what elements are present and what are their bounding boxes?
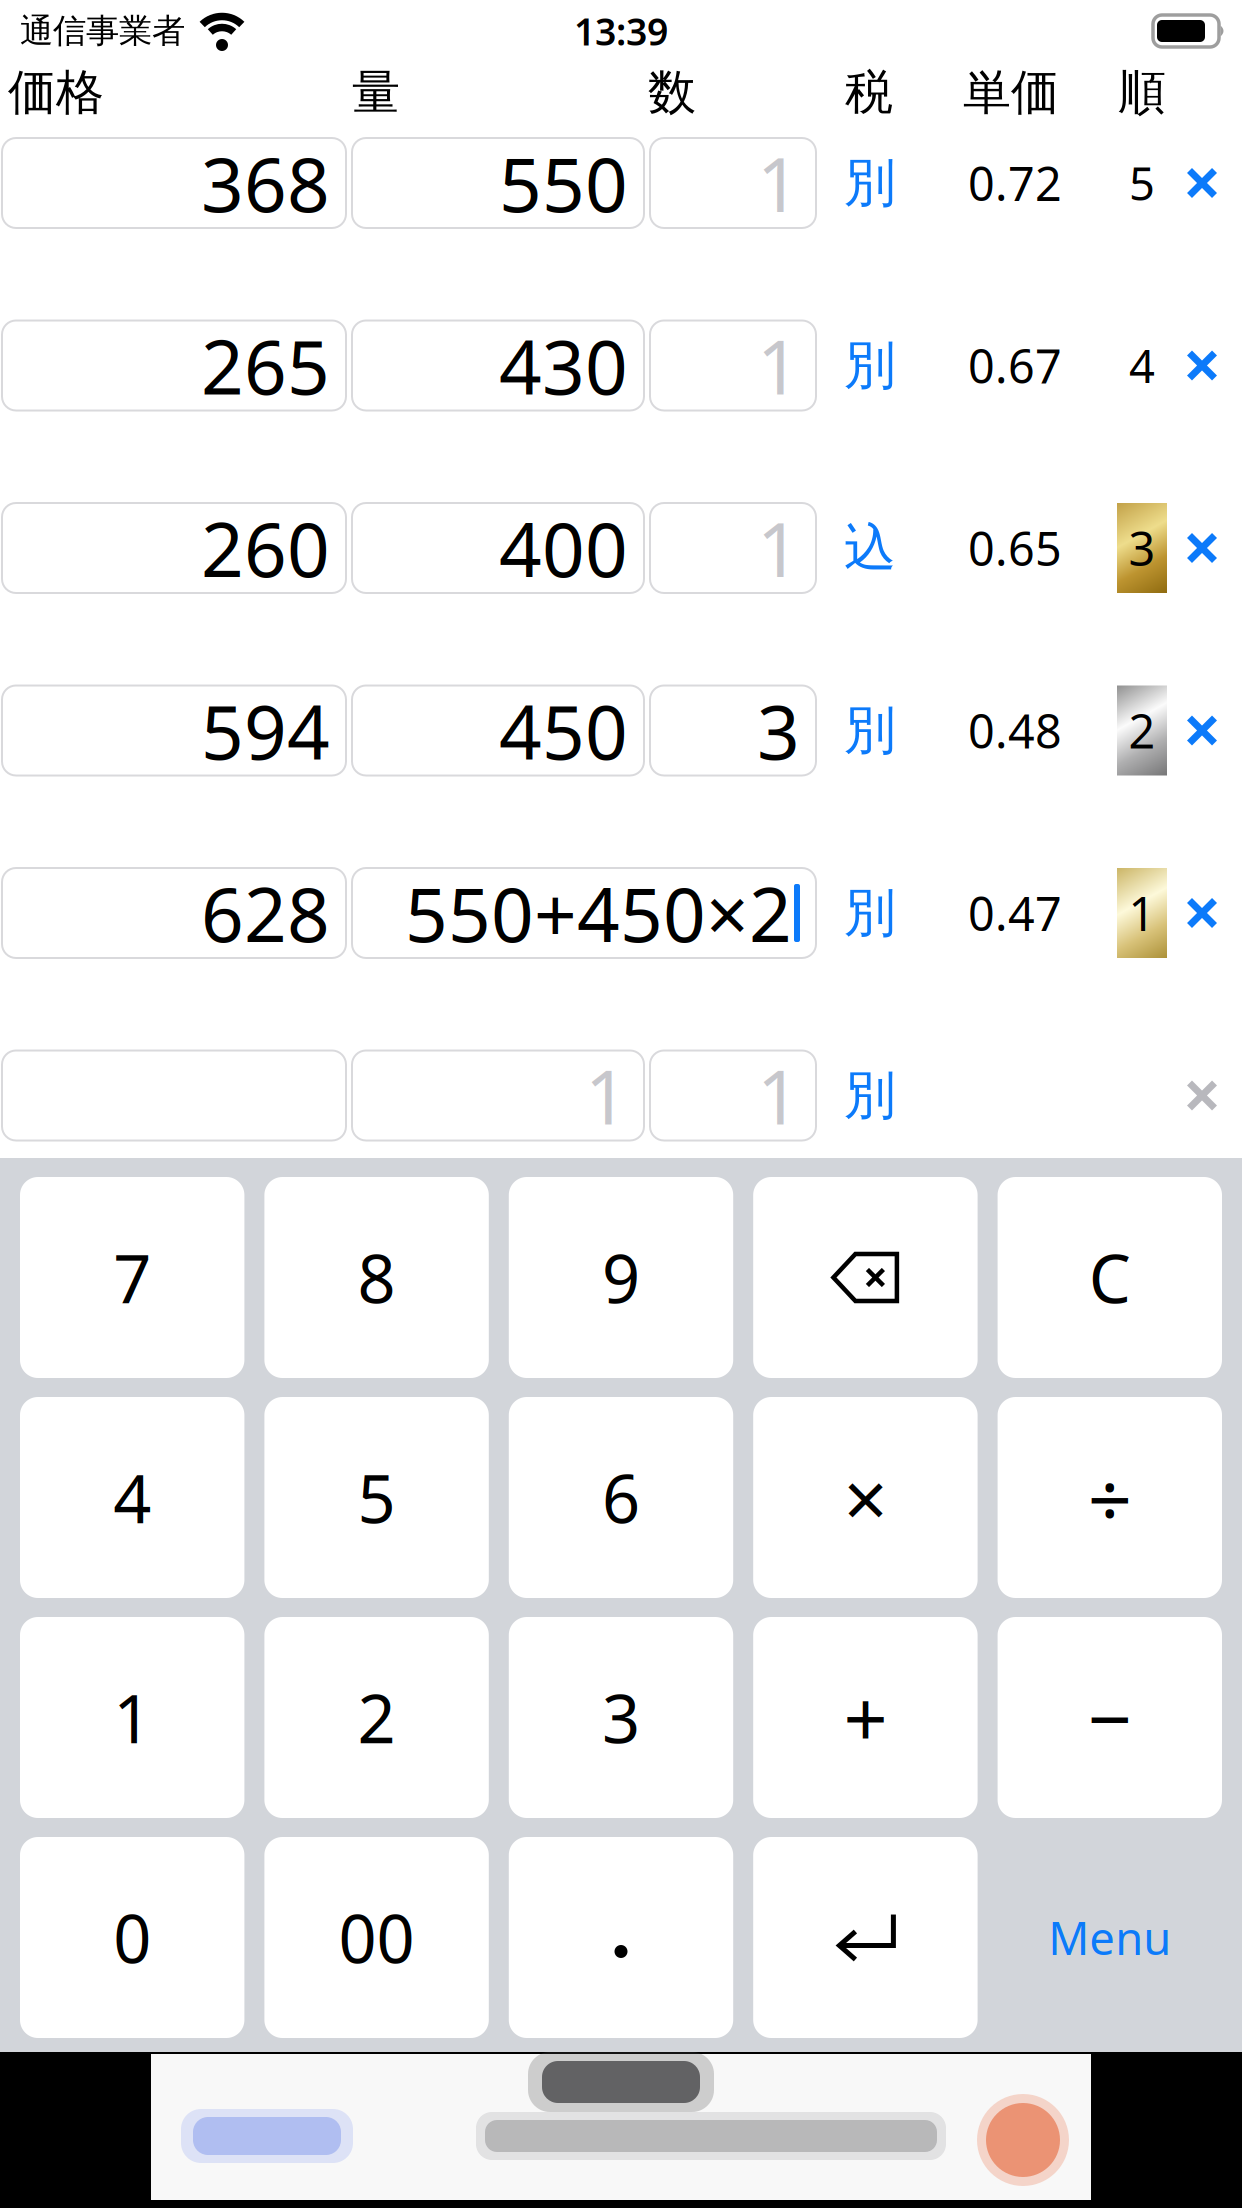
staticText: 別 [844,151,896,215]
staticText: − [1088,1666,1132,1769]
button[interactable]: 6 [509,1397,733,1598]
staticText: 9 [602,1233,640,1322]
button[interactable]: Edit value [650,1050,816,1140]
staticText: + [843,1666,887,1769]
button[interactable]: C [998,1177,1222,1378]
staticText: 0.48 [968,699,1062,761]
button[interactable]: Edit value [2,503,346,593]
button[interactable]: 9 [509,1177,733,1378]
staticText: 5 [1129,153,1155,213]
staticText: 1 [1128,882,1155,944]
staticText: Menu [1048,1907,1171,1968]
button[interactable]: Edit value [352,138,644,228]
button[interactable]: Edit value [352,320,644,410]
button[interactable]: 5 [264,1397,489,1598]
staticText: 400 [499,498,628,598]
button[interactable]: 3 [509,1617,733,1818]
button[interactable]: ÷ [998,1397,1222,1598]
button[interactable]: − [998,1617,1222,1818]
staticText: 1 [757,1046,800,1145]
button[interactable]: Edit value [2,868,346,958]
staticText: 0.47 [968,882,1062,944]
button[interactable]: Backspace [753,1177,978,1378]
staticText: 別 [844,881,896,945]
button[interactable]: 別 [844,320,896,410]
button[interactable]: 8 [264,1177,489,1378]
staticText: 13:39 [574,6,668,56]
staticText: 3 [602,1673,640,1762]
staticText: 価格 [8,63,104,122]
button[interactable]: Delete row [1177,138,1227,228]
button[interactable]: Decimal point [509,1837,733,2038]
staticText: 3 [1128,517,1155,579]
staticText: 1 [757,316,800,415]
staticText: 1 [757,498,800,598]
button[interactable]: + [753,1617,978,1818]
button[interactable]: 4 [20,1397,244,1598]
staticText: 別 [844,699,896,762]
button[interactable]: Delete row [1177,685,1227,775]
staticText: 3 [757,681,800,780]
button[interactable]: Menu [998,1837,1222,2038]
button[interactable]: Edit value [2,685,346,775]
staticText: 8 [358,1233,396,1322]
staticText: 00 [339,1893,415,1982]
staticText: 2 [1128,699,1155,761]
button[interactable]: 別 [844,1050,896,1140]
staticText: 1 [113,1673,151,1762]
button[interactable]: 込 [844,503,896,593]
button[interactable]: Edit value [352,503,644,593]
button[interactable]: Edit value [352,1050,644,1140]
staticText: 4 [113,1453,151,1542]
staticText: 順 [1118,63,1166,122]
staticText: 0 [113,1893,151,1982]
button[interactable]: Delete row [1177,503,1227,593]
staticText: 550+450×2 [405,863,792,963]
staticText: 0.72 [968,152,1062,214]
staticText: 単価 [963,63,1059,122]
staticText: 368 [201,133,330,233]
staticText: 594 [201,681,330,780]
staticText: 0.65 [968,517,1062,579]
button[interactable]: Delete row [1177,868,1227,958]
button[interactable]: 0 [20,1837,244,2038]
staticText: 260 [201,498,330,598]
button[interactable]: Edit value [2,138,346,228]
button[interactable]: × [753,1397,978,1598]
button[interactable]: 7 [20,1177,244,1378]
button[interactable]: 別 [844,138,896,228]
staticText: ÷ [1088,1446,1132,1549]
staticText: 450 [499,681,628,780]
staticText: 別 [844,1064,896,1127]
staticText: 7 [113,1233,151,1322]
staticText: 628 [201,863,330,963]
button[interactable]: Edit value [352,685,644,775]
staticText: 1 [585,1046,628,1145]
button[interactable]: Edit value [2,320,346,410]
button[interactable]: Edit value [650,320,816,410]
staticText: × [843,1446,887,1549]
button[interactable]: 別 [844,868,896,958]
button[interactable]: 1 [20,1617,244,1818]
button[interactable]: Edit value [650,503,816,593]
staticText: 別 [844,334,896,397]
button[interactable]: Edit value [650,685,816,775]
button[interactable]: 00 [264,1837,489,2038]
button[interactable]: Edit value [352,868,816,958]
staticText: 通信事業者 [20,10,185,51]
button[interactable]: Delete row [1177,320,1227,410]
staticText: 0.67 [968,334,1062,396]
button[interactable]: Return [753,1837,978,2038]
button[interactable]: Delete row [1177,1050,1227,1140]
button[interactable]: 別 [844,685,896,775]
button[interactable]: Edit value [650,138,816,228]
button[interactable]: Edit value [2,1050,346,1140]
staticText: 込 [844,516,896,580]
staticText: 430 [499,316,628,415]
staticText: 4 [1129,335,1155,396]
staticText: 550 [499,133,628,233]
staticText: 1 [757,133,800,233]
button[interactable]: 2 [264,1617,489,1818]
staticText: 数 [648,63,696,122]
staticText: 6 [602,1453,640,1542]
